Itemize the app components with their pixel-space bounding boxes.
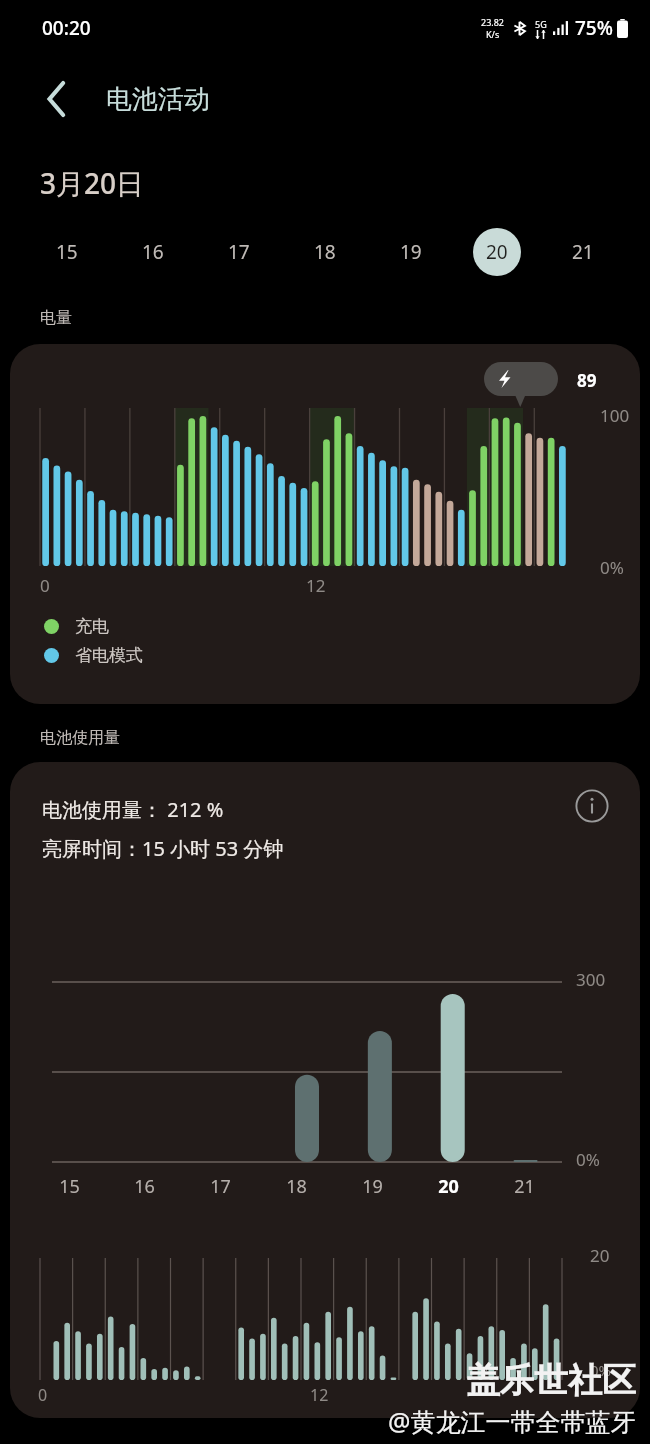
- button[interactable]: 20: [454, 224, 540, 280]
- staticText: 充电: [75, 616, 109, 637]
- staticText: @黄龙江一带全带蓝牙: [388, 1404, 636, 1438]
- staticText: 17: [210, 1174, 231, 1199]
- staticText: 23.82: [481, 16, 505, 28]
- staticText: 3月20日: [40, 164, 145, 202]
- staticText: 0: [38, 1384, 48, 1406]
- button[interactable]: 100: [10, 344, 640, 704]
- staticText: 亮屏时间：15 小时 53 分钟: [42, 835, 284, 862]
- staticText: 20: [438, 1174, 459, 1199]
- staticText: 15: [56, 239, 78, 265]
- button[interactable]: 18: [282, 224, 368, 280]
- staticText: 89: [577, 369, 597, 392]
- staticText: 18: [314, 239, 336, 265]
- button[interactable]: Info: [568, 782, 616, 830]
- staticText: 16: [142, 239, 164, 265]
- staticText: 0%: [576, 1148, 600, 1171]
- staticText: 0%: [600, 556, 624, 579]
- staticText: 电池使用量: [40, 728, 120, 748]
- staticText: 75%: [575, 15, 613, 41]
- button[interactable]: 17: [196, 224, 282, 280]
- staticText: 20: [486, 239, 508, 265]
- staticText: 21: [572, 239, 594, 265]
- staticText: 盖乐世社区: [466, 1359, 636, 1402]
- staticText: 省电模式: [75, 645, 143, 666]
- staticText: 5G: [535, 18, 547, 30]
- staticText: 电池活动: [106, 83, 210, 116]
- staticText: 0%: [590, 1360, 612, 1380]
- button[interactable]: 15: [24, 224, 110, 280]
- staticText: 20: [590, 1244, 610, 1267]
- staticText: 21: [514, 1174, 535, 1199]
- button[interactable]: Back: [30, 72, 84, 126]
- staticText: 0: [40, 574, 50, 597]
- staticText: 电量: [40, 308, 72, 328]
- staticText: 12: [306, 574, 326, 597]
- staticText: 00:20: [42, 15, 91, 41]
- staticText: 19: [400, 239, 422, 265]
- button[interactable]: 电池使用量： 212 %: [10, 762, 640, 1418]
- staticText: 电池使用量： 212 %: [42, 796, 224, 823]
- staticText: 17: [228, 239, 250, 265]
- staticText: 18: [286, 1174, 307, 1199]
- button[interactable]: 19: [368, 224, 454, 280]
- button[interactable]: 16: [110, 224, 196, 280]
- staticText: 15: [59, 1174, 80, 1199]
- staticText: 16: [134, 1174, 155, 1199]
- staticText: 300: [576, 968, 606, 991]
- staticText: K/s: [486, 28, 500, 40]
- staticText: 19: [362, 1174, 383, 1199]
- button[interactable]: 21: [540, 224, 626, 280]
- staticText: 100: [600, 404, 630, 427]
- staticText: 12: [310, 1384, 329, 1406]
